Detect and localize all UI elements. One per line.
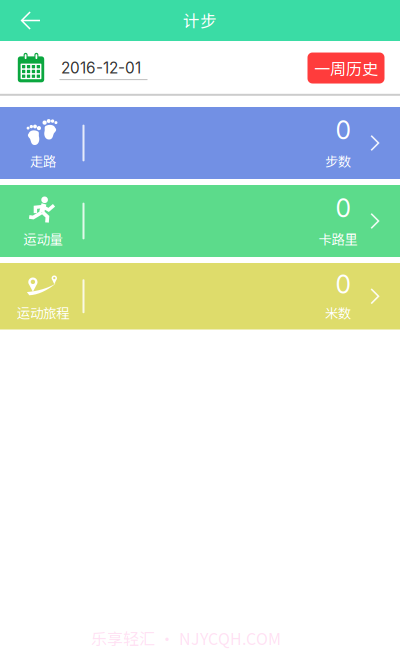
button[interactable]: 走路 <box>0 107 400 179</box>
button[interactable]: 一周历史 <box>307 52 384 83</box>
staticText: 0 <box>335 193 350 223</box>
staticText: 米数 <box>325 303 351 322</box>
staticText: 走路 <box>30 151 56 170</box>
staticText: 2016-12-01 <box>61 59 141 77</box>
staticText: 0 <box>335 270 350 299</box>
staticText: 计步 <box>183 8 217 32</box>
staticText: 乐享轻汇 · NJYCQH.COM <box>91 626 281 650</box>
staticText: 0 <box>335 115 350 145</box>
button[interactable]: 运动量 <box>0 185 400 257</box>
staticText: 卡路里 <box>318 229 357 248</box>
staticText: 运动量 <box>23 229 62 248</box>
button[interactable]: 运动旅程 <box>0 263 400 329</box>
staticText: 一周历史 <box>314 56 378 80</box>
button[interactable]: Back <box>9 0 53 41</box>
staticText: 步数 <box>325 151 351 170</box>
staticText: 运动旅程 <box>17 303 69 322</box>
